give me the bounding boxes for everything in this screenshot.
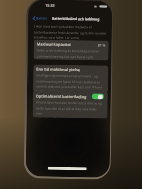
button[interactable]: Ena tid maksimal ytelse bbox=[33, 64, 108, 93]
button[interactable]: Maximal kapacitet bbox=[33, 39, 109, 61]
staticText: 87 % bbox=[98, 42, 106, 48]
staticText: Batteritillstånd och laddning bbox=[52, 16, 100, 21]
staticText: Intelligent dynamiske programmene - og m… bbox=[36, 73, 103, 93]
button[interactable]: Optimaliserat batterilading bbox=[32, 90, 108, 119]
staticText: Maximal kapacitet bbox=[37, 41, 72, 47]
button[interactable]: Toggle optimised charging bbox=[92, 93, 104, 100]
button[interactable]: Back to Settings bbox=[33, 15, 47, 21]
staticText: Batteri bbox=[36, 15, 47, 21]
staticText: Ena tid maksimal ytelse bbox=[36, 66, 80, 72]
staticText: I ikon med stort sjalvakken medveta er b… bbox=[34, 24, 107, 41]
staticText: iPhone lärer hvordan bruke mot å lere av… bbox=[35, 100, 104, 119]
staticText: Detta ar en mätning av batterikapacitete… bbox=[36, 48, 100, 59]
staticText: Optimaliserat batterilading bbox=[36, 93, 87, 99]
staticText: 15:33 bbox=[45, 3, 55, 8]
